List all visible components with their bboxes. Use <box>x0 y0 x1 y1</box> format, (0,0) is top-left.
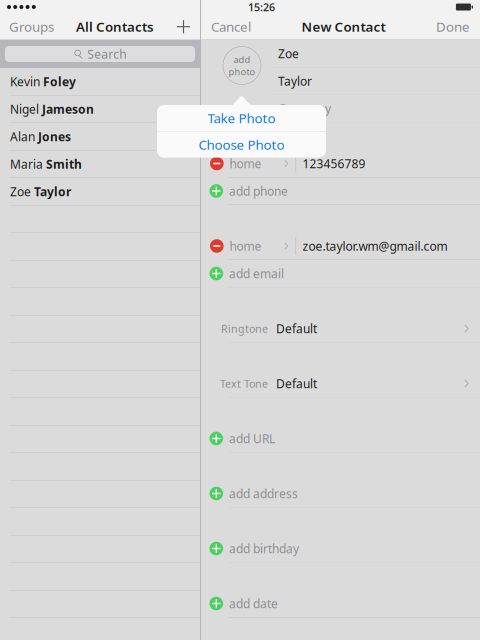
staticText: add address <box>229 485 298 501</box>
staticText: add birthday <box>229 540 299 556</box>
staticText: Foley <box>43 73 76 89</box>
button[interactable]: add address <box>201 480 480 507</box>
button[interactable]: Alan <box>0 123 200 150</box>
staticText: zoe.taylor.wm@gmail.com <box>303 238 448 254</box>
staticText: Default <box>276 320 317 336</box>
staticText: Text Tone <box>220 376 268 391</box>
staticText: All Contacts <box>76 18 154 35</box>
staticText: Taylor <box>34 183 71 199</box>
button[interactable]: Choose Photo <box>157 132 326 158</box>
staticText: Nigel <box>10 101 39 117</box>
staticText: Taylor <box>278 73 312 89</box>
button[interactable]: Done <box>426 14 480 40</box>
button[interactable]: Kevin <box>0 68 200 95</box>
staticText: add <box>233 53 250 65</box>
button[interactable]: add URL <box>201 425 480 452</box>
staticText: add date <box>229 595 278 611</box>
button[interactable]: Maria <box>0 150 200 178</box>
button[interactable]: Text Tone <box>201 370 480 397</box>
staticText: Take Photo <box>207 109 275 127</box>
staticText: Choose Photo <box>198 136 284 153</box>
staticText: Done <box>436 18 470 35</box>
button[interactable]: Take Photo <box>157 105 326 131</box>
button[interactable]: Groups <box>0 14 63 40</box>
button[interactable]: Zoe <box>0 178 200 205</box>
button[interactable]: Zoe <box>201 40 480 67</box>
button[interactable]: add birthday <box>201 535 480 562</box>
button[interactable]: Company <box>201 95 480 122</box>
staticText: 15:26 <box>248 0 275 14</box>
staticText: Groups <box>9 18 54 35</box>
staticText: add email <box>229 265 284 281</box>
staticText: Jameson <box>42 101 94 117</box>
staticText: Zoe <box>10 183 31 199</box>
staticText: New Contact <box>301 18 385 35</box>
button[interactable]: home <box>201 232 480 260</box>
staticText: Zoe <box>278 45 299 61</box>
staticText: Company <box>278 100 331 116</box>
staticText: 123456789 <box>303 155 366 171</box>
staticText: home <box>230 155 262 171</box>
button[interactable]: Add photo <box>216 39 268 91</box>
button[interactable]: Add contact <box>167 14 200 40</box>
button[interactable]: add email <box>201 260 480 287</box>
button[interactable]: Ringtone <box>201 315 480 342</box>
button[interactable]: add phone <box>201 177 480 205</box>
staticText: add phone <box>229 183 288 199</box>
staticText: Ringtone <box>221 321 268 336</box>
staticText: photo <box>228 65 255 78</box>
staticText: Default <box>276 375 317 391</box>
staticText: Kevin <box>10 73 40 89</box>
staticText: home <box>230 238 262 254</box>
staticText: Maria <box>10 156 43 172</box>
button[interactable]: Nigel <box>0 95 200 123</box>
button[interactable]: home <box>201 150 480 177</box>
button[interactable]: Cancel <box>201 14 261 40</box>
staticText: Search <box>87 46 126 62</box>
staticText: Alan <box>10 128 35 144</box>
button[interactable]: add date <box>201 590 480 617</box>
button[interactable]: Taylor <box>201 67 480 95</box>
staticText: Jones <box>38 128 71 144</box>
staticText: Smith <box>46 156 82 172</box>
staticText: add URL <box>229 430 275 446</box>
staticText: Cancel <box>211 18 251 35</box>
